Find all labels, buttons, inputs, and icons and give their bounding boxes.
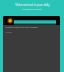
staticText: Morning calm and focus session <box>5 26 39 29</box>
staticText: meditation practice <box>22 8 42 11</box>
staticText: 12 min <box>5 31 12 34</box>
staticText: Welcome back to your daily <box>15 3 50 7</box>
